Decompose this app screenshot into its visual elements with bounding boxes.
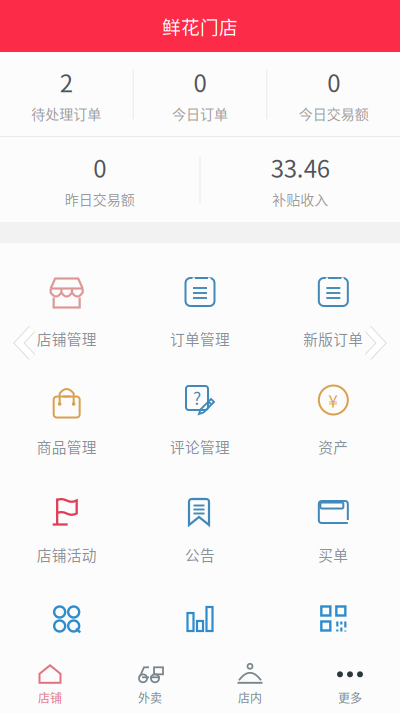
staticText: 33.46 — [271, 150, 330, 185]
staticText: 店铺 — [38, 689, 62, 706]
button[interactable] — [133, 567, 267, 612]
button[interactable]: 更多 — [300, 657, 400, 713]
button[interactable]: 下一页 — [364, 326, 385, 360]
staticText: ? — [193, 385, 201, 410]
button[interactable] — [267, 567, 400, 612]
staticText: 0 — [93, 150, 106, 185]
button[interactable]: ? — [133, 351, 267, 459]
staticText: 今日订单 — [172, 103, 228, 123]
button[interactable]: 上一页 — [15, 326, 36, 360]
staticText: 外卖 — [138, 689, 162, 706]
staticText: 买单 — [318, 544, 348, 565]
staticText: 待处理订单 — [31, 103, 101, 123]
staticText: 资产 — [318, 436, 348, 457]
button[interactable]: 商品管理 — [0, 351, 133, 459]
staticText: 0 — [193, 64, 206, 99]
staticText: 今日交易额 — [299, 103, 369, 123]
button[interactable]: 新版订单 — [267, 243, 400, 351]
staticText: 鲜花门店 — [162, 12, 238, 39]
staticText: 公告 — [185, 544, 215, 565]
button[interactable]: 公告 — [133, 459, 267, 567]
button[interactable]: 订单管理 — [133, 243, 267, 351]
staticText: 0 — [327, 64, 340, 99]
staticText: 店内 — [238, 689, 262, 706]
staticText: 昨日交易额 — [65, 189, 135, 209]
staticText: 评论管理 — [170, 436, 230, 457]
staticText: 店铺管理 — [37, 328, 97, 349]
button[interactable]: ¥ — [267, 351, 400, 459]
staticText: 更多 — [338, 689, 362, 706]
staticText: ¥ — [328, 387, 338, 413]
button[interactable]: 店铺管理 — [0, 243, 133, 351]
staticText: 订单管理 — [170, 328, 230, 349]
staticText: 补贴收入 — [272, 189, 328, 209]
staticText: 商品管理 — [37, 436, 97, 457]
button[interactable]: 外卖 — [100, 657, 200, 713]
staticText: 店铺活动 — [37, 544, 97, 565]
button[interactable]: 店内 — [200, 657, 300, 713]
staticText: 新版订单 — [303, 328, 363, 349]
staticText: 2 — [60, 64, 73, 99]
button[interactable]: 买单 — [267, 459, 400, 567]
button[interactable]: 店铺活动 — [0, 459, 133, 567]
button[interactable]: 店铺 — [0, 657, 100, 713]
button[interactable] — [0, 567, 133, 612]
